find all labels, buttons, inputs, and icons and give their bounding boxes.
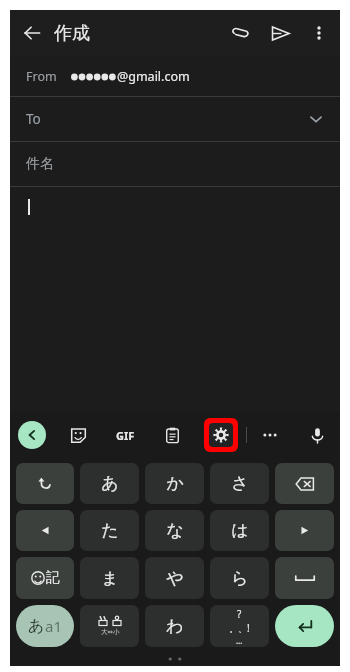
staticText: な <box>166 520 184 541</box>
button[interactable]: や <box>145 557 204 599</box>
staticText: From <box>26 68 57 85</box>
staticText: GIF <box>116 428 135 443</box>
staticText: わ <box>166 616 184 637</box>
button[interactable]: More options <box>300 14 338 52</box>
button[interactable]: More <box>255 420 285 450</box>
staticText: ま <box>101 568 119 589</box>
staticText: あ <box>101 473 119 494</box>
button[interactable]: Stickers <box>63 420 93 450</box>
staticText: 。 <box>229 623 238 634</box>
button[interactable]: わ <box>145 605 204 647</box>
staticText: 件名 <box>26 155 54 173</box>
button[interactable]: Small characters <box>80 605 139 647</box>
staticText: 、 <box>238 623 247 634</box>
staticText: 作成 <box>54 22 90 45</box>
button[interactable]: な <box>145 510 204 551</box>
button[interactable]: ま <box>80 557 139 599</box>
button[interactable]: Backspace <box>275 463 334 504</box>
staticText: a1 <box>45 616 62 636</box>
button[interactable]: た <box>80 510 139 551</box>
staticText: @gmail.com <box>117 68 190 85</box>
staticText: … <box>236 635 243 646</box>
button[interactable]: Back <box>10 11 54 55</box>
button[interactable]: GIF <box>110 420 140 450</box>
button[interactable]: Switch input mode <box>16 605 74 647</box>
staticText: ら <box>231 568 249 589</box>
button[interactable]: Enter <box>275 605 334 647</box>
button[interactable]: To <box>10 97 340 141</box>
button[interactable]: Voice input <box>302 420 332 450</box>
button[interactable]: Undo <box>16 463 74 504</box>
button[interactable]: Punctuation <box>210 605 269 647</box>
button[interactable]: は <box>210 510 269 551</box>
staticText: To <box>26 110 41 128</box>
staticText: あ <box>28 616 45 636</box>
staticText: は <box>231 520 249 541</box>
button[interactable] <box>10 187 340 412</box>
button[interactable]: あ <box>80 463 139 504</box>
staticText: 大⇔小 <box>101 628 120 636</box>
button[interactable]: Cursor left <box>16 510 74 551</box>
staticText: や <box>166 568 184 589</box>
staticText: ? <box>237 607 242 621</box>
button[interactable]: Expand toolbar <box>18 421 46 449</box>
button[interactable]: Attach file <box>220 13 260 53</box>
button[interactable]: Emoji and symbols <box>16 557 74 599</box>
button[interactable]: Clipboard <box>157 420 187 450</box>
button[interactable]: Cursor right <box>275 510 334 551</box>
staticText: た <box>101 520 119 541</box>
staticText: さ <box>231 473 249 494</box>
staticText: か <box>166 473 184 494</box>
button[interactable]: さ <box>210 463 269 504</box>
button[interactable]: ら <box>210 557 269 599</box>
button[interactable]: Settings <box>204 418 238 452</box>
staticText: 記 <box>46 569 60 587</box>
button[interactable]: Space <box>275 557 334 599</box>
button[interactable]: Send <box>260 13 300 53</box>
staticText: ! <box>247 621 250 635</box>
button[interactable]: 件名 <box>10 142 340 186</box>
button[interactable]: From <box>10 56 340 96</box>
button[interactable]: か <box>145 463 204 504</box>
